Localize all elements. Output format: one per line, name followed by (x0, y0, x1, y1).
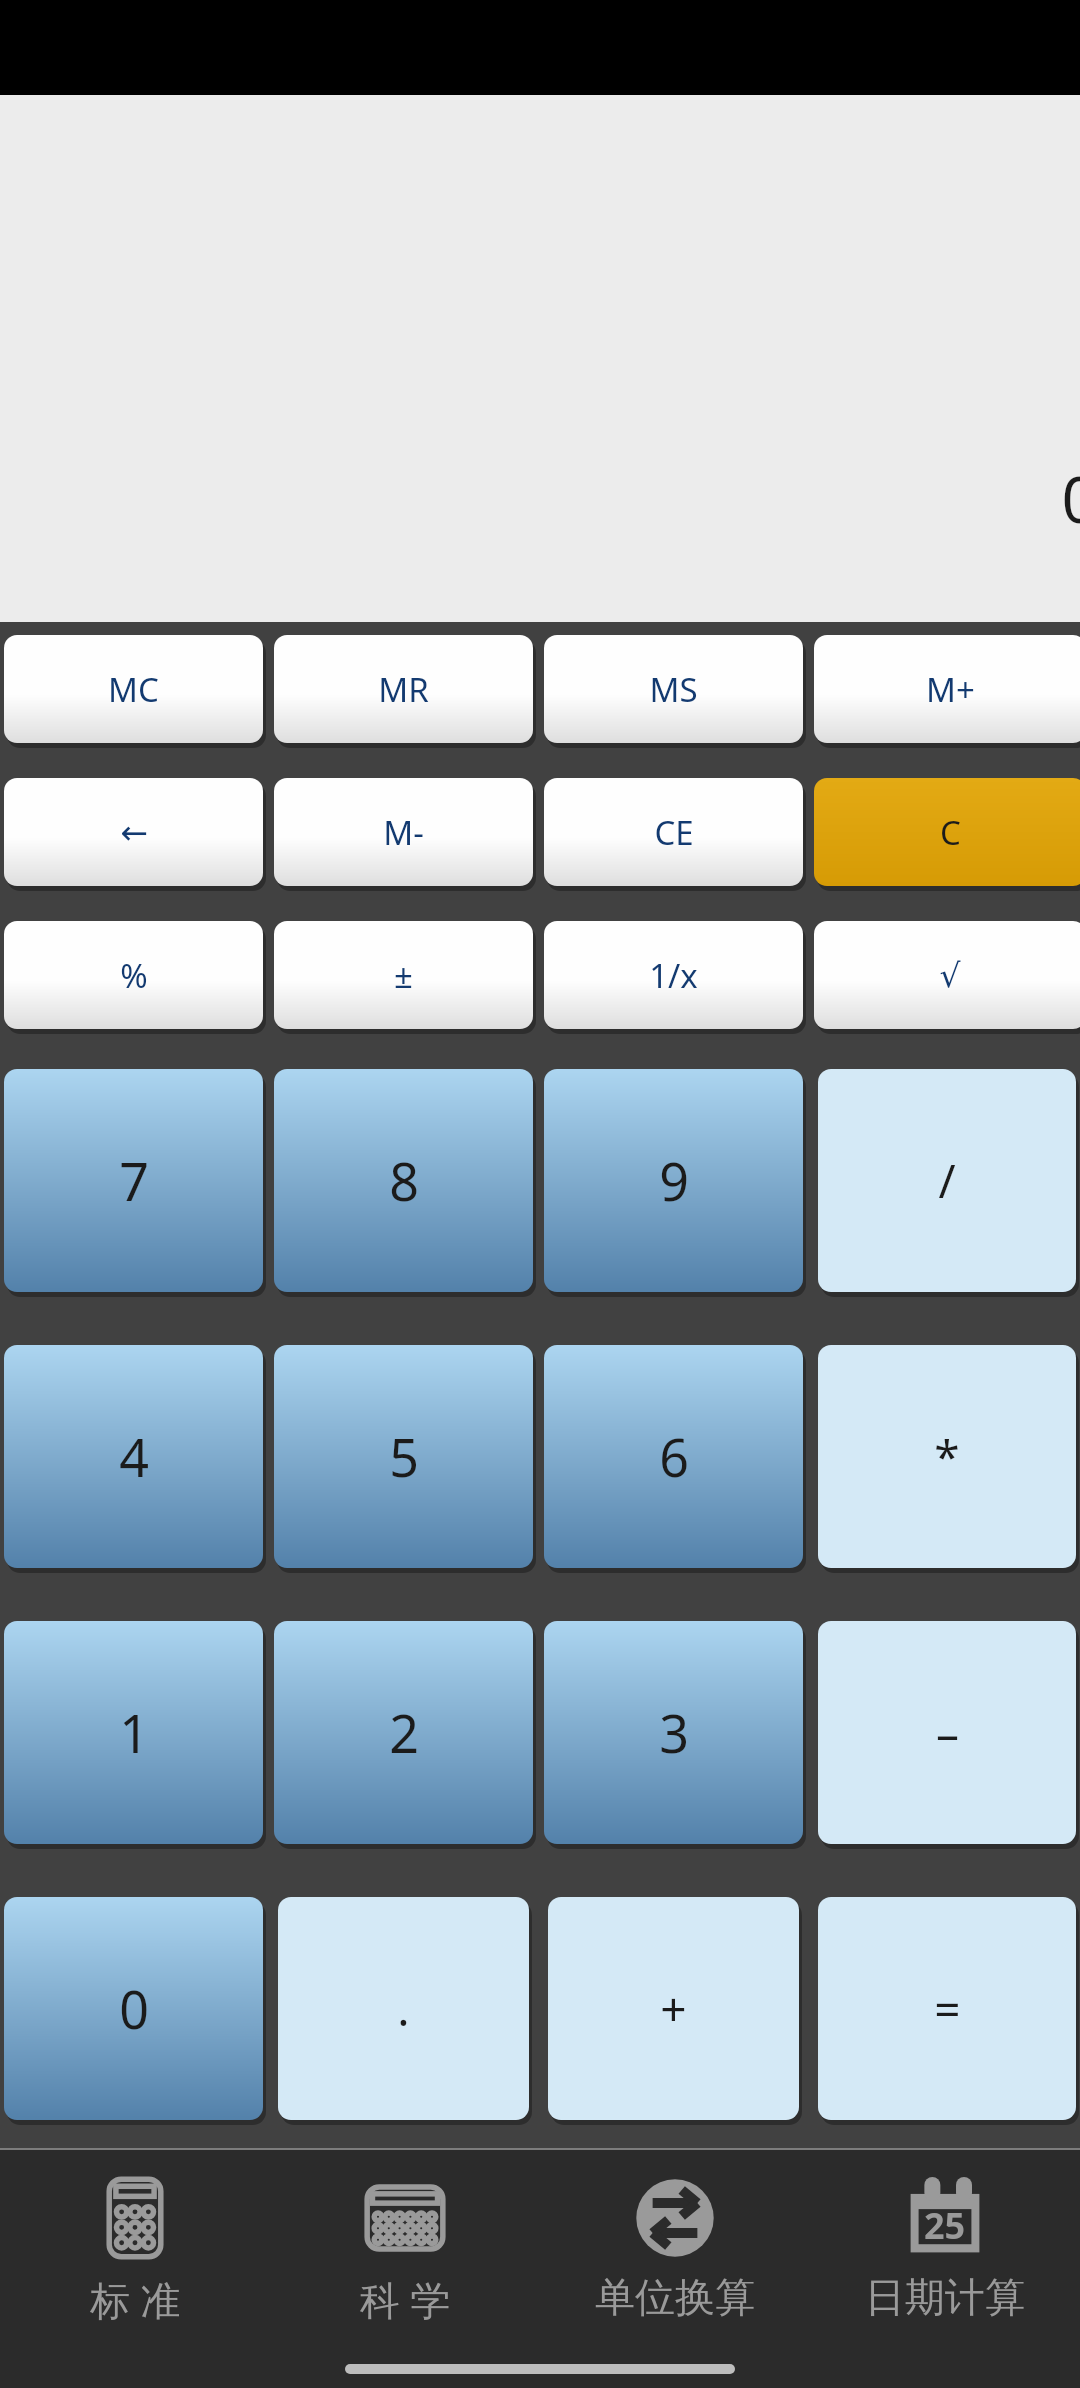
staticText: . (397, 1977, 410, 2040)
button[interactable]: Standard calculator (0, 2148, 270, 2388)
staticText: 9 (659, 1145, 689, 1216)
button[interactable]: Unit conversion (540, 2148, 810, 2388)
button[interactable]: Memory recall (274, 635, 533, 743)
staticText: MC (108, 667, 159, 712)
staticText: 2 (389, 1697, 419, 1768)
staticText: ± (394, 953, 413, 998)
button[interactable]: Add (548, 1897, 799, 2120)
button[interactable]: Square root (814, 921, 1080, 1029)
button[interactable]: 3 (544, 1621, 803, 1844)
staticText: – (936, 1701, 959, 1764)
button[interactable]: Memory clear (4, 635, 263, 743)
staticText: + (660, 1977, 687, 2040)
button[interactable]: 5 (274, 1345, 533, 1568)
button[interactable]: 0 (4, 1897, 263, 2120)
button[interactable]: Date calculation (810, 2148, 1080, 2388)
button[interactable]: Scientific calculator (270, 2148, 540, 2388)
staticText: / (938, 1149, 956, 1212)
button[interactable]: Plus minus (274, 921, 533, 1029)
staticText: 0 (1061, 455, 1080, 542)
button[interactable]: Clear (814, 778, 1080, 886)
staticText: 5 (389, 1421, 419, 1492)
button[interactable]: 9 (544, 1069, 803, 1292)
staticText: * (934, 1425, 960, 1488)
staticText: 6 (659, 1421, 689, 1492)
staticText: 4 (119, 1421, 149, 1492)
staticText: MR (378, 667, 429, 712)
button[interactable]: Subtract (818, 1621, 1076, 1844)
staticText: 1 (119, 1697, 149, 1768)
button[interactable]: Equals (818, 1897, 1076, 2120)
staticText: M+ (926, 667, 975, 712)
button[interactable]: 4 (4, 1345, 263, 1568)
staticText: 1/x (649, 953, 698, 998)
button[interactable]: Clear entry (544, 778, 803, 886)
staticText: = (934, 1977, 961, 2040)
staticText: √ (939, 956, 961, 994)
staticText: 25 (924, 2201, 966, 2250)
staticText: 日期计算 (865, 2272, 1025, 2322)
button[interactable]: 8 (274, 1069, 533, 1292)
staticText: M- (383, 810, 424, 855)
button[interactable]: 2 (274, 1621, 533, 1844)
staticText: C (940, 810, 961, 855)
button[interactable]: Multiply (818, 1345, 1076, 1568)
staticText: ← (120, 813, 148, 851)
staticText: 3 (659, 1697, 689, 1768)
button[interactable]: Divide (818, 1069, 1076, 1292)
staticText: MS (649, 667, 698, 712)
staticText: 科 学 (360, 2272, 451, 2327)
staticText: CE (654, 810, 694, 855)
button[interactable]: Memory add (814, 635, 1080, 743)
button[interactable]: 7 (4, 1069, 263, 1292)
staticText: % (120, 953, 148, 998)
button[interactable]: Memory store (544, 635, 803, 743)
staticText: 标 准 (90, 2272, 181, 2327)
button[interactable]: 1 (4, 1621, 263, 1844)
button[interactable]: Memory subtract (274, 778, 533, 886)
staticText: 0 (119, 1973, 149, 2044)
button[interactable]: Percent (4, 921, 263, 1029)
staticText: 7 (119, 1145, 149, 1216)
staticText: 8 (389, 1145, 419, 1216)
button[interactable]: Backspace (4, 778, 263, 886)
button[interactable]: Decimal point (278, 1897, 529, 2120)
button[interactable]: 6 (544, 1345, 803, 1568)
staticText: 单位换算 (595, 2272, 755, 2322)
button[interactable]: Reciprocal (544, 921, 803, 1029)
